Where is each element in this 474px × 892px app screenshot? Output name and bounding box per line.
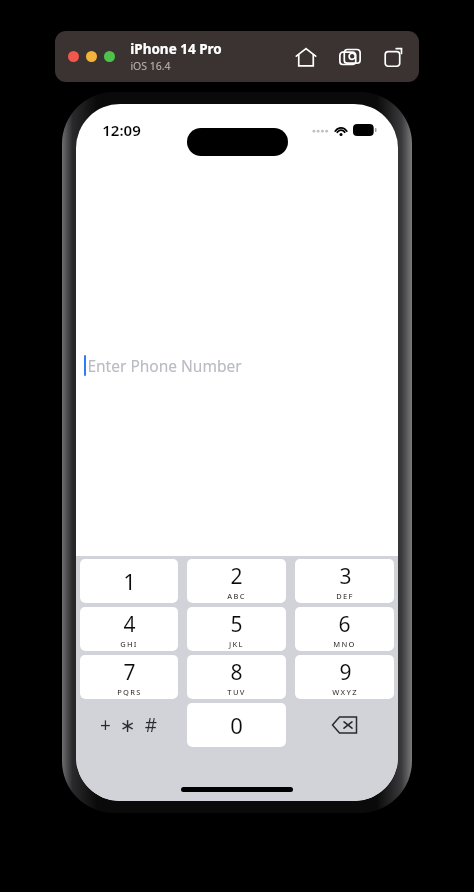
staticText: iOS 16.4 bbox=[130, 59, 171, 73]
staticText: DEF bbox=[336, 591, 354, 601]
staticText: JKL bbox=[229, 639, 244, 649]
staticText: 4 bbox=[123, 610, 136, 639]
button[interactable]: Rotate bbox=[383, 46, 405, 68]
staticText: WXYZ bbox=[332, 687, 358, 697]
button[interactable]: 0 bbox=[187, 703, 286, 747]
staticText: PQRS bbox=[117, 687, 142, 697]
staticText: iPhone 14 Pro bbox=[130, 40, 222, 58]
button[interactable]: + ∗ # bbox=[80, 703, 178, 747]
staticText: 7 bbox=[123, 658, 136, 687]
staticText: GHI bbox=[120, 639, 138, 649]
button[interactable]: 6 bbox=[295, 607, 394, 651]
button[interactable]: Delete bbox=[295, 703, 394, 747]
staticText: MNO bbox=[333, 639, 356, 649]
button[interactable]: 8 bbox=[187, 655, 286, 699]
staticText: 6 bbox=[338, 610, 351, 639]
button[interactable]: Enter Phone Number bbox=[76, 348, 398, 382]
staticText: 0 bbox=[230, 710, 243, 740]
button[interactable]: 9 bbox=[295, 655, 394, 699]
staticText: 1 bbox=[123, 566, 136, 596]
staticText: 2 bbox=[230, 562, 243, 591]
button[interactable]: 5 bbox=[187, 607, 286, 651]
button[interactable]: 2 bbox=[187, 559, 286, 603]
button[interactable]: Home bbox=[295, 46, 317, 68]
staticText: 9 bbox=[339, 658, 352, 687]
staticText: + ∗ # bbox=[100, 712, 159, 738]
staticText: 3 bbox=[339, 562, 352, 591]
staticText: TUV bbox=[227, 687, 246, 697]
button[interactable]: 7 bbox=[80, 655, 178, 699]
staticText: 8 bbox=[230, 658, 243, 687]
button[interactable]: 4 bbox=[80, 607, 178, 651]
staticText: 5 bbox=[230, 610, 243, 639]
staticText: Enter Phone Number bbox=[87, 355, 242, 376]
button[interactable]: 1 bbox=[80, 559, 178, 603]
button[interactable]: 3 bbox=[295, 559, 394, 603]
button[interactable]: Screenshot bbox=[339, 46, 361, 68]
staticText: 12:09 bbox=[102, 120, 141, 140]
staticText: ABC bbox=[227, 591, 246, 601]
